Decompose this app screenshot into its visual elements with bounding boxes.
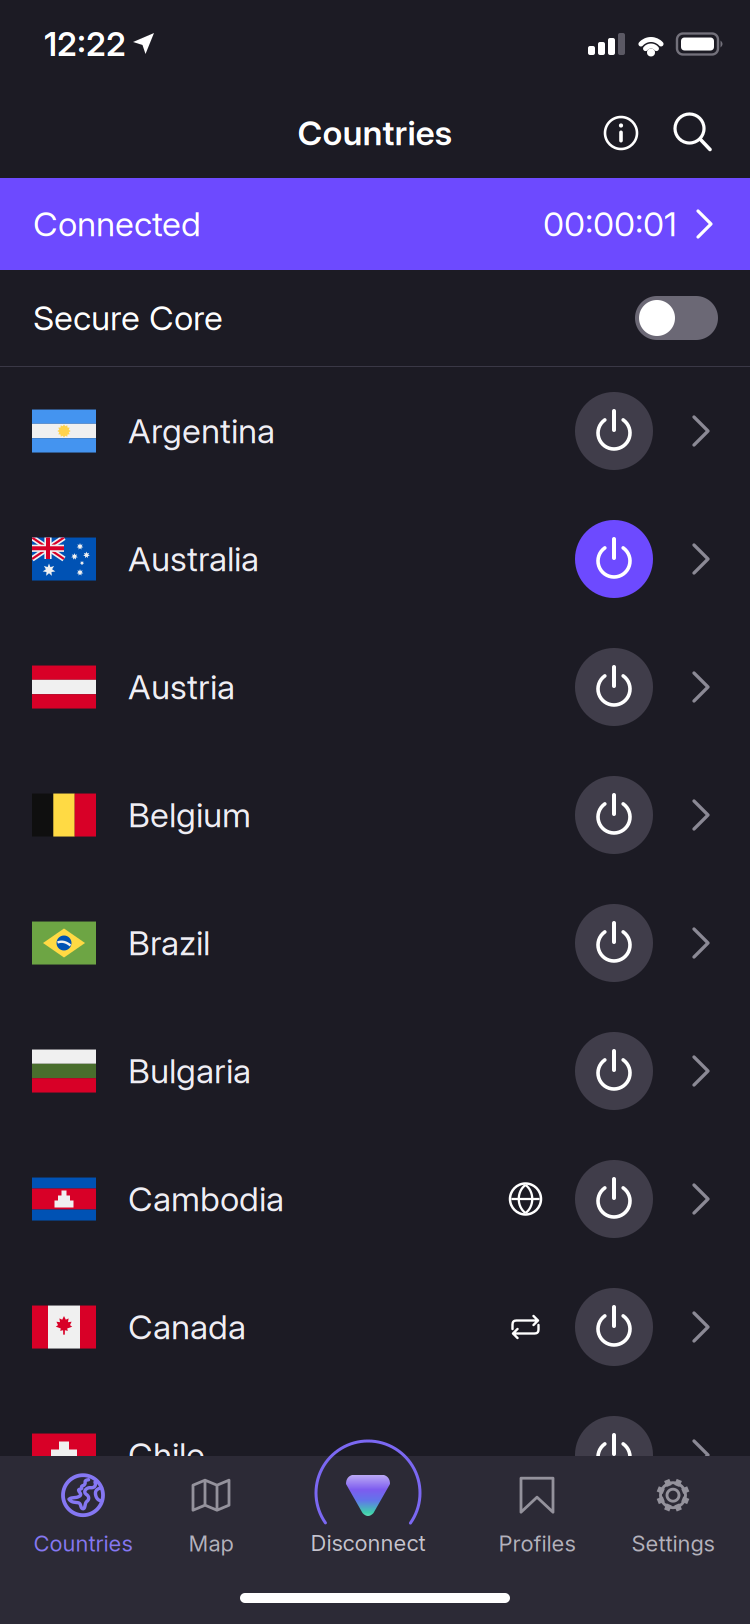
button[interactable]: Bulgaria [0, 1007, 750, 1135]
staticText: Map [188, 1530, 233, 1557]
button[interactable]: Disconnect [298, 1441, 438, 1561]
button[interactable]: Chile [0, 1391, 750, 1519]
button[interactable]: Connect [575, 904, 653, 982]
button[interactable]: Connect [575, 648, 653, 726]
staticText: Countries [297, 112, 452, 153]
button[interactable]: Connected [0, 178, 750, 270]
staticText: Argentina [128, 410, 275, 451]
button[interactable]: Austria [0, 623, 750, 751]
staticText: Belgium [128, 794, 251, 835]
button[interactable]: Connect [575, 1032, 653, 1110]
button[interactable]: Connect [575, 776, 653, 854]
staticText: Canada [128, 1306, 246, 1347]
staticText: Bulgaria [128, 1050, 251, 1091]
staticText: Brazil [128, 922, 210, 963]
staticText: Connected [33, 203, 201, 244]
button[interactable]: Disconnect [575, 520, 653, 598]
button[interactable]: Australia [0, 495, 750, 623]
button[interactable]: Connect [575, 1288, 653, 1366]
button[interactable]: Search [637, 114, 712, 152]
staticText: Chile [128, 1434, 205, 1475]
button[interactable]: Map [188, 1475, 233, 1557]
button[interactable]: Profiles [498, 1475, 575, 1557]
staticText: Countries [33, 1530, 132, 1557]
button[interactable]: Connect [575, 1416, 653, 1494]
staticText: Australia [128, 538, 259, 579]
button[interactable]: Connect [575, 1160, 653, 1238]
button[interactable]: Connect [575, 392, 653, 470]
button[interactable]: Information [605, 117, 637, 149]
staticText: Settings [631, 1530, 714, 1557]
staticText: 12:22 [44, 24, 126, 64]
button[interactable]: Cambodia [0, 1135, 750, 1263]
button[interactable]: Belgium [0, 751, 750, 879]
button[interactable]: Secure Core [635, 296, 718, 340]
button[interactable]: Argentina [0, 367, 750, 495]
staticText: Disconnect [310, 1530, 425, 1556]
button[interactable]: Canada [0, 1263, 750, 1391]
button[interactable]: Settings [631, 1475, 714, 1557]
staticText: Austria [128, 666, 235, 707]
button[interactable]: Brazil [0, 879, 750, 1007]
button[interactable]: Countries [33, 1475, 132, 1557]
staticText: Cambodia [128, 1178, 284, 1219]
staticText: Profiles [498, 1530, 575, 1557]
staticText: 00:00:01 [543, 203, 677, 244]
staticText: Secure Core [33, 297, 223, 338]
